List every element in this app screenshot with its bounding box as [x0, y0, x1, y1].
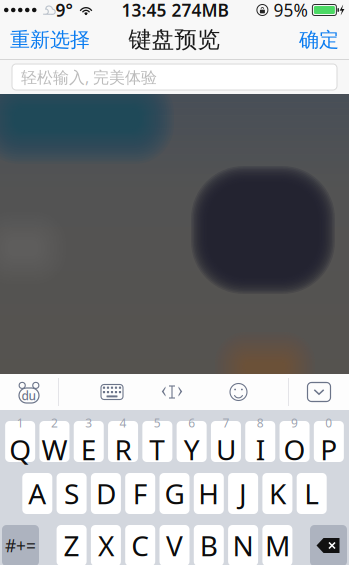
button[interactable]: C: [125, 525, 155, 565]
staticText: D: [96, 475, 116, 512]
staticText: 13:45 274MB: [121, 0, 228, 21]
button[interactable]: Baidu input method: [0, 374, 58, 410]
button[interactable]: 9: [280, 421, 310, 462]
staticText: #+=: [5, 534, 36, 557]
staticText: V: [166, 527, 183, 564]
button[interactable]: N: [228, 525, 258, 565]
staticText: 键盘预览: [128, 26, 220, 54]
staticText: P: [320, 431, 337, 468]
staticText: Q: [9, 431, 31, 468]
staticText: A: [28, 475, 46, 512]
staticText: J: [239, 475, 247, 512]
button[interactable]: H: [194, 473, 224, 514]
button[interactable]: 重新选择: [0, 19, 100, 60]
button[interactable]: A: [22, 473, 52, 514]
staticText: K: [269, 475, 286, 512]
staticText: 2: [51, 415, 58, 431]
staticText: 5: [154, 415, 161, 431]
staticText: T: [149, 431, 165, 468]
button[interactable]: 0: [314, 421, 344, 462]
button[interactable]: L: [297, 473, 327, 514]
staticText: B: [200, 527, 218, 564]
button[interactable]: B: [194, 525, 224, 565]
staticText: M: [265, 527, 290, 564]
button[interactable]: 6: [177, 421, 207, 462]
button[interactable]: Z: [57, 525, 87, 565]
button[interactable]: K: [262, 473, 292, 514]
button[interactable]: 8: [245, 421, 275, 462]
staticText: W: [41, 431, 67, 468]
button[interactable]: 1: [5, 421, 35, 462]
staticText: Y: [184, 431, 200, 468]
button[interactable]: 4: [108, 421, 138, 462]
staticText: 3: [85, 415, 92, 431]
button[interactable]: J: [228, 473, 258, 514]
staticText: G: [164, 475, 184, 512]
button[interactable]: Emoji: [179, 374, 288, 410]
staticText: 9: [291, 415, 298, 431]
staticText: 0: [325, 415, 332, 431]
button[interactable]: S: [57, 473, 87, 514]
staticText: H: [198, 475, 219, 512]
staticText: 1: [17, 415, 24, 431]
staticText: 重新选择: [10, 27, 90, 52]
staticText: C: [131, 527, 149, 564]
button[interactable]: G: [159, 473, 189, 514]
button[interactable]: 3: [74, 421, 104, 462]
staticText: O: [284, 431, 306, 468]
button[interactable]: 确定: [289, 19, 349, 60]
button[interactable]: Move cursor: [165, 374, 179, 410]
staticText: du: [21, 387, 36, 403]
staticText: R: [114, 431, 131, 468]
button[interactable]: F: [125, 473, 155, 514]
button[interactable]: 7: [211, 421, 241, 462]
button[interactable]: Keyboard layout: [59, 374, 165, 410]
staticText: L: [304, 475, 319, 512]
staticText: 7: [222, 415, 229, 431]
staticText: 确定: [299, 27, 339, 52]
button[interactable]: M: [262, 525, 292, 565]
button[interactable]: X: [91, 525, 121, 565]
staticText: 9°: [55, 0, 72, 21]
button[interactable]: Symbols: [2, 525, 39, 565]
staticText: N: [233, 527, 254, 564]
staticText: 6: [188, 415, 195, 431]
button[interactable]: Hide keyboard: [289, 374, 349, 410]
staticText: I: [256, 431, 265, 468]
button[interactable]: Delete: [310, 525, 347, 565]
staticText: 4: [119, 415, 126, 431]
button[interactable]: V: [159, 525, 189, 565]
staticText: U: [216, 431, 236, 468]
staticText: S: [64, 475, 79, 512]
staticText: 轻松输入, 完美体验: [21, 66, 157, 88]
staticText: 8: [257, 415, 264, 431]
staticText: X: [98, 527, 114, 564]
button[interactable]: D: [91, 473, 121, 514]
button[interactable]: 2: [39, 421, 69, 462]
staticText: Z: [64, 527, 80, 564]
staticText: 95%: [273, 0, 307, 21]
staticText: F: [133, 475, 148, 512]
staticText: E: [81, 431, 97, 468]
button[interactable]: 5: [142, 421, 172, 462]
